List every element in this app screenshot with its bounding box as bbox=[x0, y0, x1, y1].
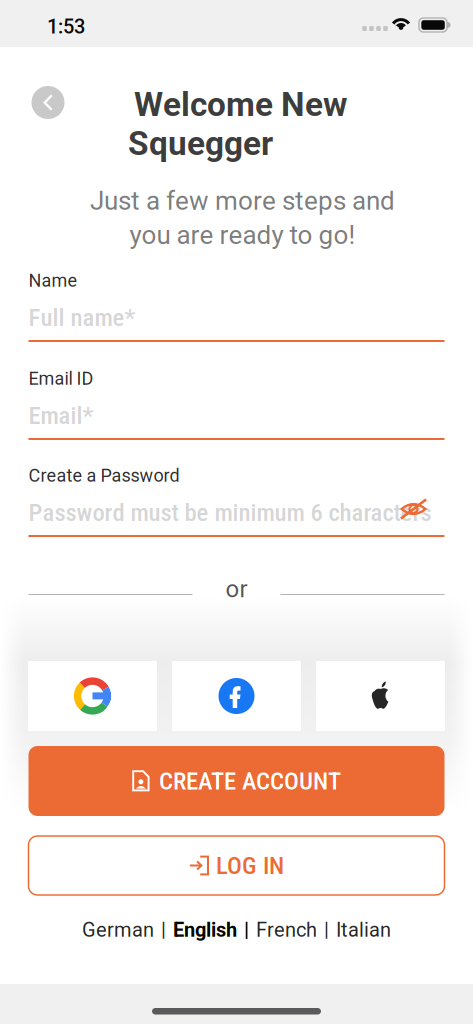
staticText: Name bbox=[28, 270, 77, 291]
staticText: Password must be minimum 6 characters bbox=[28, 498, 431, 527]
staticText: CREATE ACCOUNT bbox=[159, 766, 341, 795]
staticText: | bbox=[324, 918, 329, 942]
button[interactable]: German bbox=[75, 915, 161, 945]
staticText: Email* bbox=[28, 401, 93, 430]
staticText: LOG IN bbox=[216, 851, 284, 880]
button[interactable]: Sign up with Apple bbox=[316, 661, 445, 731]
button[interactable]: English bbox=[166, 915, 244, 945]
staticText: French bbox=[256, 918, 317, 942]
staticText: German bbox=[82, 918, 154, 942]
button[interactable]: Show password bbox=[400, 498, 427, 520]
staticText: Create a Password bbox=[28, 465, 179, 486]
staticText: Just a few more steps and bbox=[90, 185, 395, 216]
button[interactable]: LOG IN bbox=[28, 836, 444, 895]
staticText: Email ID bbox=[28, 368, 93, 389]
button[interactable]: French bbox=[249, 915, 324, 945]
staticText: you are ready to go! bbox=[129, 220, 355, 250]
staticText: | bbox=[161, 918, 166, 942]
staticText: 1:53 bbox=[47, 15, 85, 38]
staticText: Welcome New bbox=[134, 85, 347, 124]
staticText: | bbox=[244, 918, 249, 942]
button[interactable]: Sign up with Facebook bbox=[172, 661, 301, 731]
staticText: Squegger bbox=[128, 124, 273, 163]
staticText: Italian bbox=[336, 918, 391, 942]
button[interactable]: Back bbox=[31, 86, 64, 119]
staticText: English bbox=[173, 918, 237, 942]
button[interactable]: Italian bbox=[329, 915, 398, 945]
staticText: or bbox=[225, 575, 247, 603]
staticText: Full name* bbox=[28, 303, 135, 332]
button[interactable]: Sign up with Google bbox=[28, 661, 157, 731]
button[interactable]: CREATE ACCOUNT bbox=[28, 746, 444, 816]
